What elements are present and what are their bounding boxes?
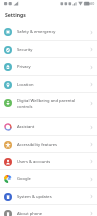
button[interactable]: System & updates xyxy=(0,188,97,205)
button[interactable]: Security xyxy=(0,41,97,58)
staticText: Accessibility features xyxy=(17,142,89,148)
staticText: Digital Wellbeing and parental controls xyxy=(17,98,89,109)
staticText: Assistant xyxy=(17,124,89,130)
button[interactable]: Location xyxy=(0,76,97,93)
button[interactable]: Users & accounts xyxy=(0,153,97,170)
button[interactable]: Privacy xyxy=(0,58,97,76)
button[interactable]: Assistant xyxy=(0,118,97,136)
staticText: System & updates xyxy=(17,194,89,200)
button[interactable]: Digital Wellbeing and parental controls xyxy=(0,93,97,118)
staticText: Google xyxy=(17,176,89,182)
button[interactable]: Safety & emergency xyxy=(0,23,97,41)
staticText: Safety & emergency xyxy=(17,29,89,35)
staticText: Location xyxy=(17,82,89,88)
staticText: Privacy xyxy=(17,64,89,70)
button[interactable]: Accessibility features xyxy=(0,136,97,153)
button[interactable]: Google xyxy=(0,170,97,188)
staticText: Security xyxy=(17,47,89,53)
button[interactable]: About phone xyxy=(0,205,97,216)
staticText: Settings xyxy=(5,12,26,19)
staticText: Users & accounts xyxy=(17,159,89,165)
staticText: About phone xyxy=(17,211,89,216)
staticText: 10:30 xyxy=(85,1,95,6)
